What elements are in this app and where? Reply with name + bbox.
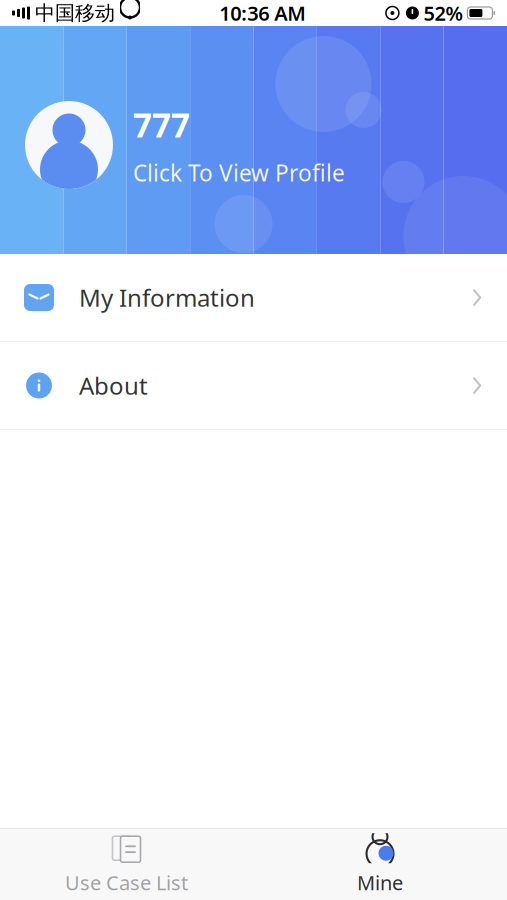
staticText: 中国移动 <box>35 1 115 25</box>
button[interactable]: Mine <box>253 829 507 900</box>
staticText: 10:36 AM <box>219 0 306 26</box>
staticText: Mine <box>357 869 403 896</box>
staticText: 52% <box>423 0 463 26</box>
staticText: About <box>79 370 148 401</box>
staticText: Click To View Profile <box>133 158 345 188</box>
staticText: 777 <box>133 102 190 147</box>
button[interactable]: About <box>0 342 507 429</box>
staticText: My Information <box>79 282 255 313</box>
staticText: Use Case List <box>65 869 188 896</box>
button[interactable]: My Information <box>0 254 507 341</box>
button[interactable]: Use Case List <box>0 829 253 900</box>
button[interactable]: Profile: 777, click to view profile <box>0 26 507 254</box>
